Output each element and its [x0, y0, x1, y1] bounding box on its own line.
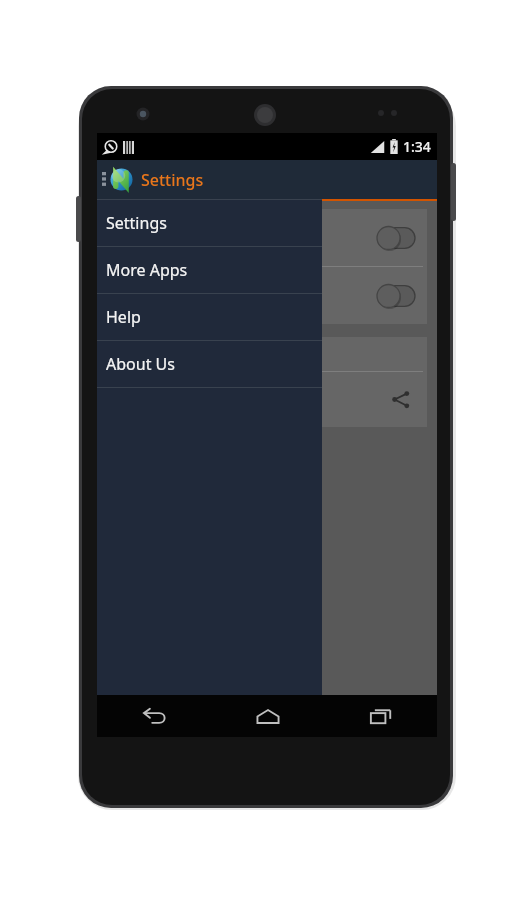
- button[interactable]: Help: [97, 294, 322, 340]
- staticText: About Us: [106, 353, 175, 375]
- button[interactable]: More Apps: [97, 247, 322, 293]
- button[interactable]: About Us: [97, 341, 322, 387]
- button[interactable]: Recents: [324, 695, 437, 737]
- staticText: Auto detect is enabled: [115, 228, 377, 247]
- button[interactable]: Vibration is enabled: [107, 267, 427, 324]
- staticText: Tell your friends too!: [115, 390, 390, 409]
- button[interactable]: Settings: [97, 200, 322, 246]
- button[interactable]: Tell your friends too!: [107, 372, 427, 427]
- staticText: Vibration is enabled: [115, 286, 377, 305]
- staticText: 1:34: [403, 137, 431, 156]
- other: Share: [390, 389, 411, 410]
- staticText: Settings: [141, 169, 204, 191]
- staticText: More Apps: [106, 259, 188, 281]
- button[interactable]: Home: [211, 695, 324, 737]
- button[interactable]: Auto detect is enabled: [107, 209, 427, 266]
- staticText: Help: [106, 306, 141, 328]
- button[interactable]: Back: [97, 695, 211, 737]
- button[interactable]: Open navigation drawer: [97, 160, 110, 199]
- staticText: Settings: [106, 212, 167, 234]
